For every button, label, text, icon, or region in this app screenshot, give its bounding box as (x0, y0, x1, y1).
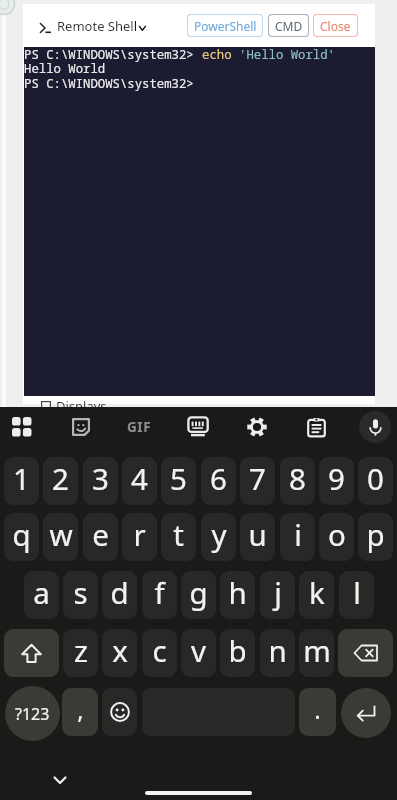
staticText: Displays (56, 397, 107, 415)
staticText: 4 (131, 458, 148, 498)
button[interactable]: x (102, 629, 137, 677)
staticText: x (112, 630, 128, 670)
staticText: z (74, 630, 88, 670)
staticText: 7 (249, 458, 266, 498)
button[interactable]: 6 (201, 457, 236, 505)
button[interactable]: PowerShell (188, 15, 262, 36)
button[interactable]: 0 (358, 457, 393, 505)
button[interactable]: Hide keyboard (45, 765, 75, 795)
button[interactable]: h (220, 571, 255, 619)
staticText: b (228, 630, 247, 670)
button[interactable]: 3 (83, 457, 118, 505)
staticText: 5 (170, 458, 187, 498)
button[interactable]: 1 (4, 457, 39, 505)
staticText: Close (320, 18, 351, 34)
button[interactable]: q (4, 513, 39, 561)
staticText: GIF (127, 418, 152, 436)
staticText: CMD (275, 18, 303, 34)
staticText: p (366, 514, 385, 554)
button[interactable]: n (260, 629, 295, 677)
button[interactable]: CMD (269, 15, 308, 36)
button[interactable]: w (43, 513, 78, 561)
button[interactable]: Shift (4, 629, 59, 677)
button[interactable]: b (220, 629, 255, 677)
button[interactable]: Close (314, 15, 357, 36)
staticText: d (110, 572, 129, 612)
staticText: PS C:\WINDOWS\system32> (24, 75, 194, 92)
staticText: 'Hello World' (239, 46, 335, 63)
staticText: Remote Shell (57, 17, 138, 35)
button[interactable]: e (83, 513, 118, 561)
button[interactable]: Voice input (359, 411, 391, 443)
button[interactable]: Keyboard (180, 409, 216, 445)
button[interactable]: Emoji (102, 688, 137, 736)
button[interactable]: m (299, 629, 334, 677)
button[interactable]: y (201, 513, 236, 561)
staticText: . (314, 693, 321, 726)
button[interactable]: f (142, 571, 177, 619)
button[interactable]: j (260, 571, 295, 619)
button[interactable]: Backspace (338, 629, 393, 677)
staticText: l (353, 572, 361, 612)
button[interactable]: 7 (240, 457, 275, 505)
staticText: s (73, 572, 88, 612)
staticText: j (274, 572, 282, 612)
button[interactable]: v (181, 629, 216, 677)
button[interactable]: 8 (280, 457, 315, 505)
staticText: v (191, 630, 206, 670)
button[interactable]: s (63, 571, 98, 619)
staticText: Hello World (24, 60, 106, 77)
button[interactable]: Apps (4, 409, 40, 445)
staticText: m (303, 630, 331, 670)
button[interactable]: o (319, 513, 354, 561)
staticText: f (154, 572, 165, 612)
button[interactable]: z (63, 629, 98, 677)
button[interactable]: , (62, 688, 98, 736)
staticText: PowerShell (194, 18, 257, 34)
staticText: t (173, 514, 184, 554)
staticText: g (189, 572, 208, 612)
button[interactable]: 5 (161, 457, 196, 505)
staticText: PS C:\WINDOWS\system32> (24, 46, 202, 63)
staticText: 9 (328, 458, 345, 498)
button[interactable]: k (299, 571, 334, 619)
button[interactable]: g (181, 571, 216, 619)
staticText: e (92, 514, 109, 554)
button[interactable]: u (240, 513, 275, 561)
button[interactable]: t (161, 513, 196, 561)
button[interactable]: r (122, 513, 157, 561)
staticText: y (211, 514, 227, 554)
button[interactable]: ?123 (5, 686, 60, 741)
staticText: ?123 (15, 703, 50, 725)
staticText: r (133, 514, 146, 554)
button[interactable]: 9 (319, 457, 354, 505)
button[interactable]: Displays (37, 396, 375, 416)
button[interactable]: GIF (117, 409, 161, 445)
button[interactable]: a (24, 571, 59, 619)
staticText: n (268, 630, 287, 670)
button[interactable]: . (299, 688, 336, 736)
staticText: u (248, 514, 267, 554)
button[interactable]: Stickers (63, 409, 99, 445)
staticText: 6 (210, 458, 227, 498)
button[interactable]: d (102, 571, 137, 619)
staticText: w (49, 514, 73, 554)
staticText: q (12, 514, 31, 554)
button[interactable]: l (339, 571, 374, 619)
button[interactable]: Clipboard (298, 409, 334, 445)
staticText: 3 (92, 458, 109, 498)
button[interactable]: c (142, 629, 177, 677)
staticText: 0 (367, 458, 384, 498)
staticText: a (33, 572, 50, 612)
staticText: 1 (13, 458, 30, 498)
button[interactable]: 4 (122, 457, 157, 505)
staticText: echo (202, 46, 239, 63)
button[interactable]: Enter (341, 688, 391, 738)
button[interactable]: i (280, 513, 315, 561)
button[interactable]: Settings (239, 409, 275, 445)
staticText: h (228, 572, 247, 612)
button[interactable]: p (358, 513, 393, 561)
staticText: c (152, 630, 167, 670)
button[interactable]: 2 (43, 457, 78, 505)
